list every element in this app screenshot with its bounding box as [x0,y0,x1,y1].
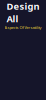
staticText: Aspects Of Versatility [4,25,41,30]
staticText: Design All [6,0,39,25]
